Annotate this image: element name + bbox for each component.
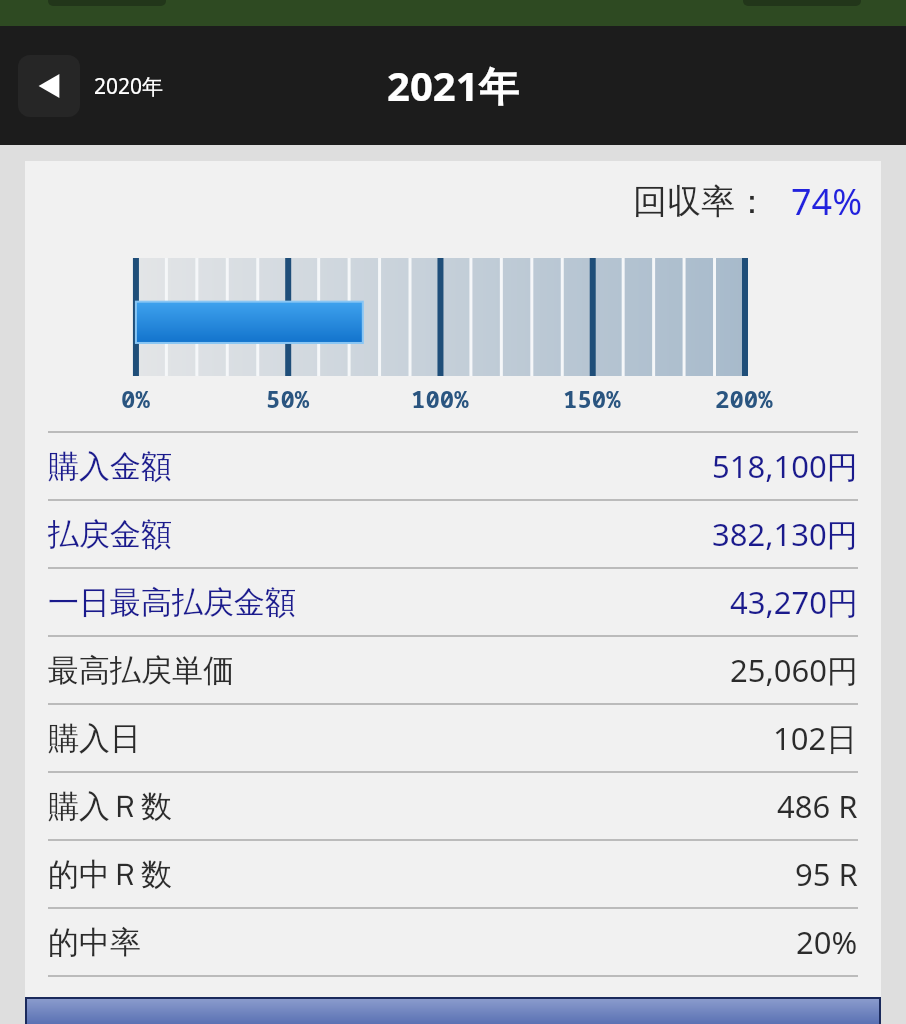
staticText: 2021年 [387,58,519,113]
staticText: 最高払戻単価 [48,651,234,690]
staticText: 的中率 [48,923,141,962]
staticText: 74% [791,177,863,226]
button[interactable]: 的中Ｒ数 [48,841,858,907]
staticText: 0% [121,382,150,415]
staticText: 382,130円 [712,513,858,555]
staticText: 20% [796,921,858,963]
staticText: 95 R [795,853,858,895]
button[interactable]: 購入日 [48,705,858,771]
staticText: 100% [411,382,469,415]
staticText: 一日最高払戻金額 [48,583,296,622]
staticText: 200% [715,382,773,415]
staticText: 的中Ｒ数 [48,855,172,894]
button[interactable]: 購入金額 [48,433,858,499]
staticText: 150% [563,382,621,415]
staticText: 43,270円 [730,581,858,623]
button[interactable]: 購入Ｒ数 [48,773,858,839]
staticText: 回収率： [633,180,769,223]
button[interactable]: 一日最高払戻金額 [48,569,858,635]
button[interactable]: Back to 2020 [18,55,164,117]
staticText: 518,100円 [712,445,858,487]
button[interactable]: 的中率 [48,909,858,975]
staticText: 486 R [777,785,858,827]
staticText: 購入日 [48,719,141,758]
staticText: 購入金額 [48,447,172,486]
staticText: 払戻金額 [48,515,172,554]
button[interactable]: 最高払戻単価 [48,637,858,703]
staticText: 2020年 [94,72,164,101]
staticText: 購入Ｒ数 [48,787,172,826]
button[interactable]: Show details [27,999,879,1024]
staticText: 50% [266,382,310,415]
staticText: 25,060円 [730,649,858,691]
staticText: 102日 [773,717,858,759]
button[interactable]: 払戻金額 [48,501,858,567]
